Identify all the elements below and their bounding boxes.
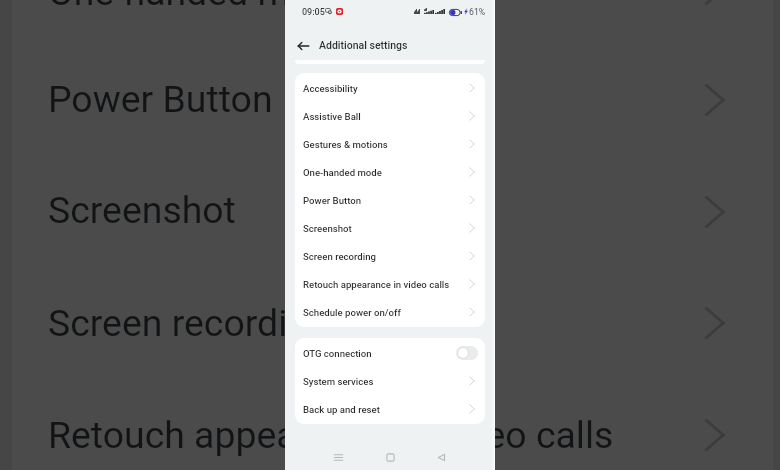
button[interactable]: Recent apps — [331, 450, 346, 465]
staticText: Schedule power on/off — [303, 307, 401, 318]
staticText: Accessibility — [303, 83, 358, 94]
button[interactable]: Gestures & motions — [295, 130, 485, 158]
button[interactable]: Schedule power on/off — [295, 298, 485, 326]
button[interactable]: Assistive Ball — [295, 102, 485, 130]
button[interactable]: Back — [291, 34, 315, 58]
staticText: Assistive Ball — [303, 111, 361, 122]
button[interactable]: Back up and reset — [295, 395, 485, 423]
staticText: Gestures & motions — [303, 139, 388, 150]
button[interactable]: Screen recording — [295, 242, 485, 270]
staticText: Screen recording — [48, 301, 329, 345]
staticText: System services — [303, 376, 374, 387]
button[interactable]: OTG connection — [295, 339, 485, 367]
staticText: 61% — [469, 7, 486, 17]
staticText: One-handed mode — [48, 0, 353, 14]
staticText: Additional settings — [319, 39, 408, 51]
staticText: Screenshot — [48, 188, 236, 232]
button[interactable]: Accessibility — [295, 74, 485, 102]
staticText: One-handed mode — [303, 167, 382, 178]
button[interactable]: Screenshot — [295, 214, 485, 242]
button[interactable]: OTG connection — [456, 346, 478, 360]
staticText: 09:05 — [302, 7, 325, 18]
staticText: Screen recording — [303, 251, 376, 262]
staticText: Back up and reset — [303, 404, 380, 415]
button[interactable]: Power Button — [295, 186, 485, 214]
staticText: Power Button — [303, 195, 362, 206]
staticText: OTG connection — [303, 348, 372, 359]
staticText: Screenshot — [303, 223, 352, 234]
button[interactable]: Retouch appearance in video calls — [295, 270, 485, 298]
button[interactable]: Back — [434, 450, 449, 465]
staticText: Retouch appearance in video calls — [303, 279, 450, 290]
staticText: Power Button — [48, 77, 273, 121]
button[interactable]: One-handed mode — [295, 158, 485, 186]
staticText: Retouch appearance in video calls — [48, 413, 614, 457]
button[interactable]: Home — [383, 450, 398, 465]
button[interactable]: System services — [295, 367, 485, 395]
